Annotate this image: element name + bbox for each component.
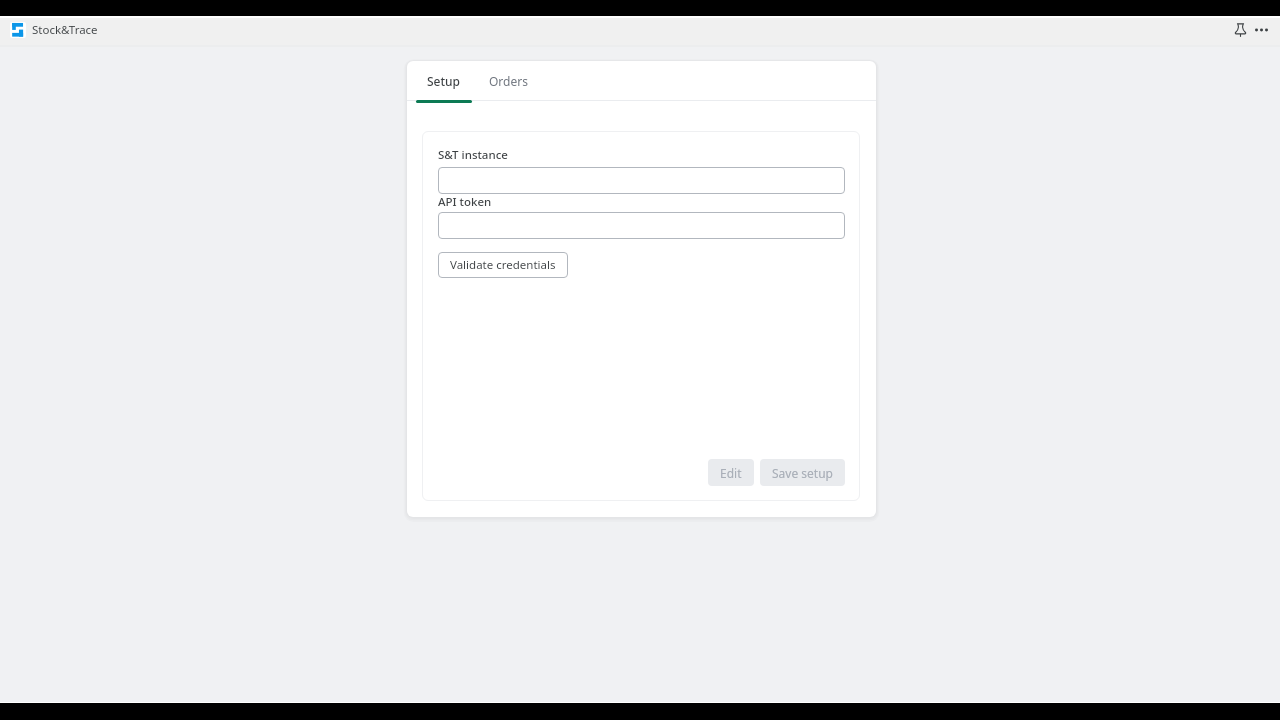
- staticText: Validate credentials: [450, 257, 556, 273]
- button[interactable]: [438, 167, 845, 194]
- button[interactable]: [438, 212, 845, 239]
- staticText: Save setup: [772, 465, 833, 481]
- button[interactable]: Validate credentials: [438, 252, 568, 278]
- staticText: S&T instance: [438, 147, 508, 163]
- staticText: API token: [438, 194, 492, 210]
- button[interactable]: Orders: [472, 61, 544, 101]
- staticText: Orders: [489, 73, 528, 89]
- button[interactable]: More options: [1251, 18, 1272, 42]
- button[interactable]: Setup: [416, 61, 472, 101]
- staticText: Setup: [427, 73, 461, 89]
- button[interactable]: Edit: [708, 459, 754, 486]
- button[interactable]: Save setup: [760, 459, 845, 486]
- staticText: Edit: [720, 465, 742, 481]
- button[interactable]: Pin: [1230, 18, 1251, 42]
- staticText: Stock&Trace: [32, 22, 98, 38]
